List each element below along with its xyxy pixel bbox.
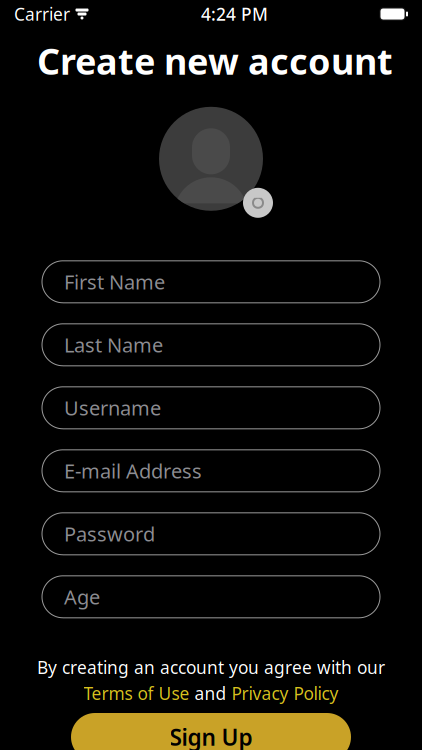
staticText: and <box>189 682 231 705</box>
staticText: By creating an account you agree with ou… <box>37 656 385 679</box>
button[interactable]: Privacy Policy <box>231 682 338 705</box>
button[interactable]: Last Name <box>42 324 380 366</box>
staticText: 4:24 PM <box>201 2 268 25</box>
staticText: Password <box>64 520 155 547</box>
staticText: Carrier <box>14 2 70 25</box>
button[interactable]: E-mail Address <box>42 450 380 492</box>
button[interactable]: First Name <box>42 261 380 303</box>
staticText: Terms of Use <box>83 682 189 705</box>
staticText: Username <box>64 394 161 421</box>
button[interactable]: Username <box>42 387 380 429</box>
staticText: Create new account <box>37 37 393 85</box>
staticText: First Name <box>64 268 165 295</box>
button[interactable]: Sign Up <box>71 713 351 750</box>
button[interactable]: Change profile photo <box>149 100 273 218</box>
staticText: E-mail Address <box>64 457 202 484</box>
button[interactable]: Password <box>42 513 380 555</box>
staticText: Last Name <box>64 331 163 358</box>
staticText: Sign Up <box>169 722 252 750</box>
staticText: Privacy Policy <box>231 682 338 705</box>
staticText: Age <box>64 583 100 610</box>
button[interactable]: Terms of Use <box>83 682 189 705</box>
button[interactable]: Age <box>42 576 380 618</box>
